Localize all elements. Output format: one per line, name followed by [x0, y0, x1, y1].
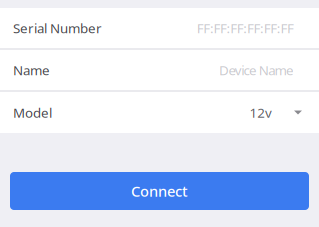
- staticText: 12v: [250, 104, 272, 121]
- staticText: FF:FF:FF:FF:FF:FF: [197, 19, 294, 37]
- button[interactable]: Connect: [10, 172, 309, 210]
- staticText: Model: [13, 104, 52, 121]
- staticText: Connect: [131, 181, 188, 201]
- staticText: Name: [13, 61, 50, 79]
- staticText: Device Name: [219, 61, 294, 79]
- staticText: Serial Number: [13, 19, 102, 37]
- button[interactable]: Model: [0, 92, 319, 133]
- button[interactable]: Name: [0, 50, 319, 90]
- button[interactable]: Serial Number: [0, 8, 319, 48]
